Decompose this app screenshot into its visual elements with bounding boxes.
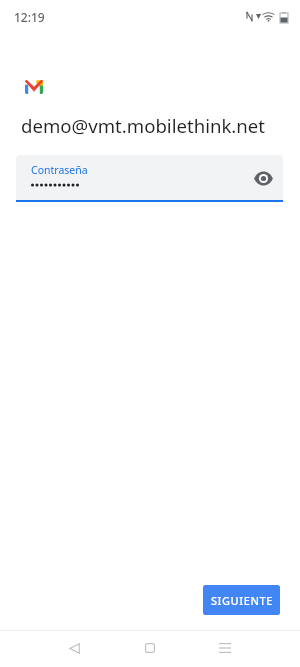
staticText: demo@vmt.mobilethink.net xyxy=(21,113,266,138)
staticText: Contraseña xyxy=(31,163,88,177)
staticText: 12:19 xyxy=(14,9,45,25)
button[interactable]: Home xyxy=(132,630,168,666)
staticText: SIGUIENTE xyxy=(211,593,273,608)
button[interactable]: Mostrar contraseña xyxy=(250,165,276,191)
button[interactable]: Contraseña xyxy=(16,155,283,200)
button[interactable]: SIGUIENTE xyxy=(203,585,280,615)
button[interactable]: Recent apps xyxy=(207,630,243,666)
button[interactable]: Back xyxy=(56,630,92,666)
